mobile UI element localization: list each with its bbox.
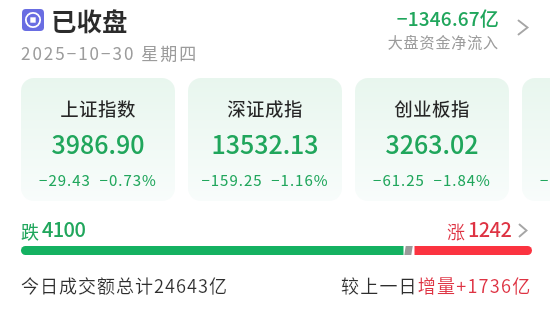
button[interactable]: 深证成指 [188,78,342,201]
staticText: −159.25 −1.16% [188,169,342,191]
button[interactable]: 跌 [21,214,86,243]
other: 查看大盘资金净流入 [517,19,529,36]
staticText: 深证成指 [188,95,342,122]
staticText: 1242 [468,214,512,243]
staticText: −18.76 −1.39% [522,169,550,191]
button[interactable]: 创业板指 [355,78,509,201]
staticText: −29.43 −0.73% [21,169,175,191]
staticText: −61.25 −1.84% [355,169,509,191]
staticText: −1346.67亿 [375,4,499,32]
staticText: 创业板指 [355,95,509,122]
staticText: 3986.90 [21,125,175,161]
staticText: 较上一日增量+1736亿 [341,272,532,298]
staticText: 4100 [42,214,86,243]
staticText: 2025−10−30 星期四 [21,40,199,65]
staticText: 跌 [21,218,39,244]
button[interactable]: 涨 [447,214,525,243]
other: 涨跌家数比例 [21,246,532,255]
staticText: 3263.02 [355,125,509,161]
staticText: 上证指数 [21,95,175,122]
staticText: 涨 [447,218,465,244]
button[interactable]: 上证指数 [21,78,175,201]
staticText: 已收盘 [51,1,128,38]
button[interactable]: −1346.67亿 [375,0,535,56]
staticText: 今日成交额总计24643亿 [21,272,228,298]
staticText: 大盘资金净流入 [375,31,499,53]
staticText: 13532.13 [188,125,342,161]
button[interactable]: 科创50 [522,78,550,201]
